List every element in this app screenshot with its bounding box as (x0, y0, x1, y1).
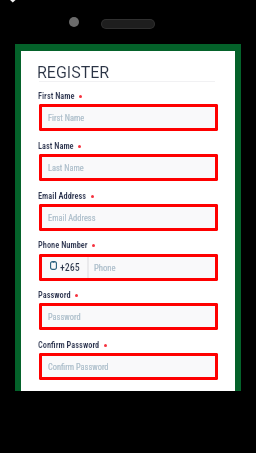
other: Mobile number (50, 261, 57, 270)
staticText: Phone (94, 263, 116, 273)
button[interactable]: Last Name (39, 154, 218, 181)
staticText: First Name (38, 91, 75, 101)
staticText: +265 (60, 262, 80, 274)
button[interactable]: Email Address (39, 204, 218, 231)
staticText: Phone Number (38, 240, 88, 250)
staticText: Confirm Password (38, 340, 100, 350)
staticText: Email Address (38, 191, 87, 201)
staticText: Confirm Password (48, 362, 109, 372)
button[interactable]: Mobile number (39, 254, 218, 281)
staticText: First Name (48, 113, 85, 123)
button[interactable]: First Name (39, 104, 218, 131)
staticText: Password (38, 290, 71, 300)
button[interactable]: Confirm Password (39, 353, 218, 380)
button[interactable]: Password (39, 303, 218, 330)
staticText: Last Name (48, 163, 84, 173)
staticText: Password (48, 312, 81, 322)
staticText: Email Address (48, 213, 96, 223)
staticText: Last Name (38, 141, 74, 151)
staticText: REGISTER (37, 63, 110, 82)
